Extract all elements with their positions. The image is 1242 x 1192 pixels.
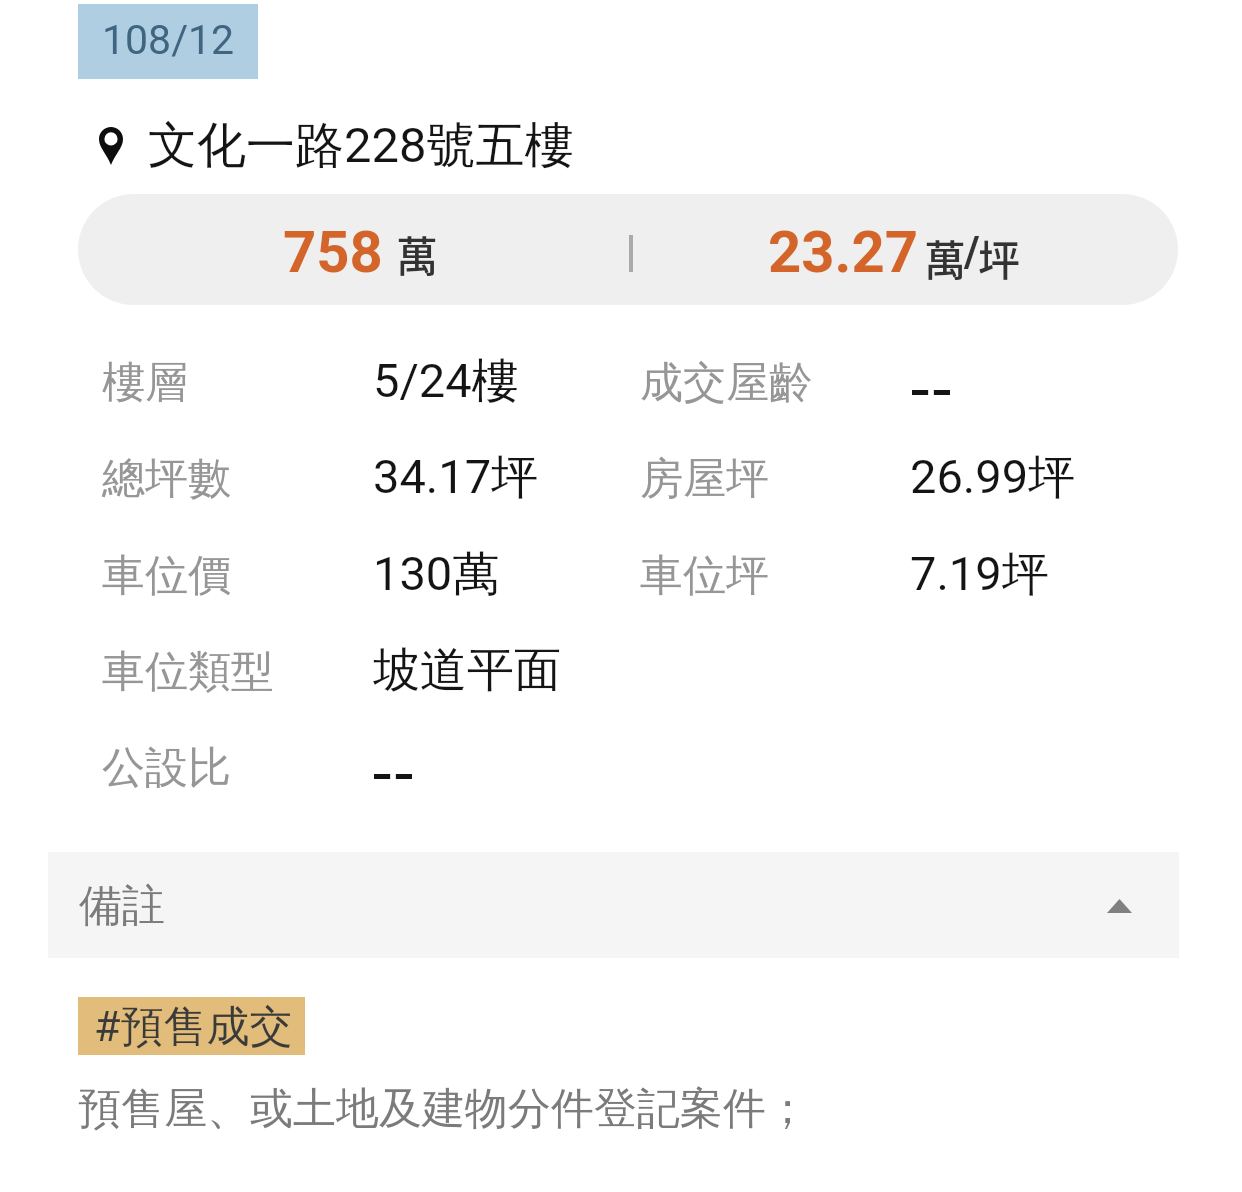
staticText: 備註 — [79, 879, 165, 933]
staticText: 房屋坪 — [640, 452, 769, 506]
staticText: 26.99坪 — [910, 448, 1076, 507]
staticText: 車位類型 — [102, 645, 274, 699]
staticText: 坪 — [978, 227, 1021, 288]
staticText: 文化一路228號五樓 — [148, 115, 574, 177]
staticText: 預售屋、或土地及建物分件登記案件； — [78, 1082, 809, 1136]
staticText: 萬 — [924, 227, 967, 288]
staticText: 坡道平面 — [373, 641, 561, 700]
button[interactable]: 108/12 — [78, 4, 258, 79]
staticText: 總坪數 — [102, 452, 231, 506]
staticText: / — [964, 227, 980, 276]
button[interactable]: #預售成交 — [78, 997, 305, 1055]
staticText: 34.17坪 — [373, 448, 539, 507]
staticText: 23.27 — [768, 218, 918, 286]
staticText: #預售成交 — [94, 1000, 293, 1054]
staticText: 萬 — [396, 223, 439, 284]
staticText: 758 — [283, 218, 383, 286]
staticText: 車位價 — [102, 549, 231, 603]
button[interactable]: Collapse remarks — [1083, 876, 1155, 936]
staticText: 5/24樓 — [373, 352, 519, 411]
button[interactable]: 758 — [78, 194, 1178, 305]
staticText: 成交屋齡 — [640, 356, 812, 410]
button[interactable]: 備註 — [48, 852, 1179, 958]
staticText: 7.19坪 — [910, 545, 1049, 604]
button[interactable]: Location — [99, 115, 574, 177]
staticText: 130萬 — [373, 545, 500, 604]
staticText: 車位坪 — [640, 549, 769, 603]
staticText: 樓層 — [102, 356, 188, 410]
staticText: 108/12 — [102, 16, 235, 64]
other: Location — [99, 115, 123, 177]
staticText: 公設比 — [102, 741, 231, 795]
